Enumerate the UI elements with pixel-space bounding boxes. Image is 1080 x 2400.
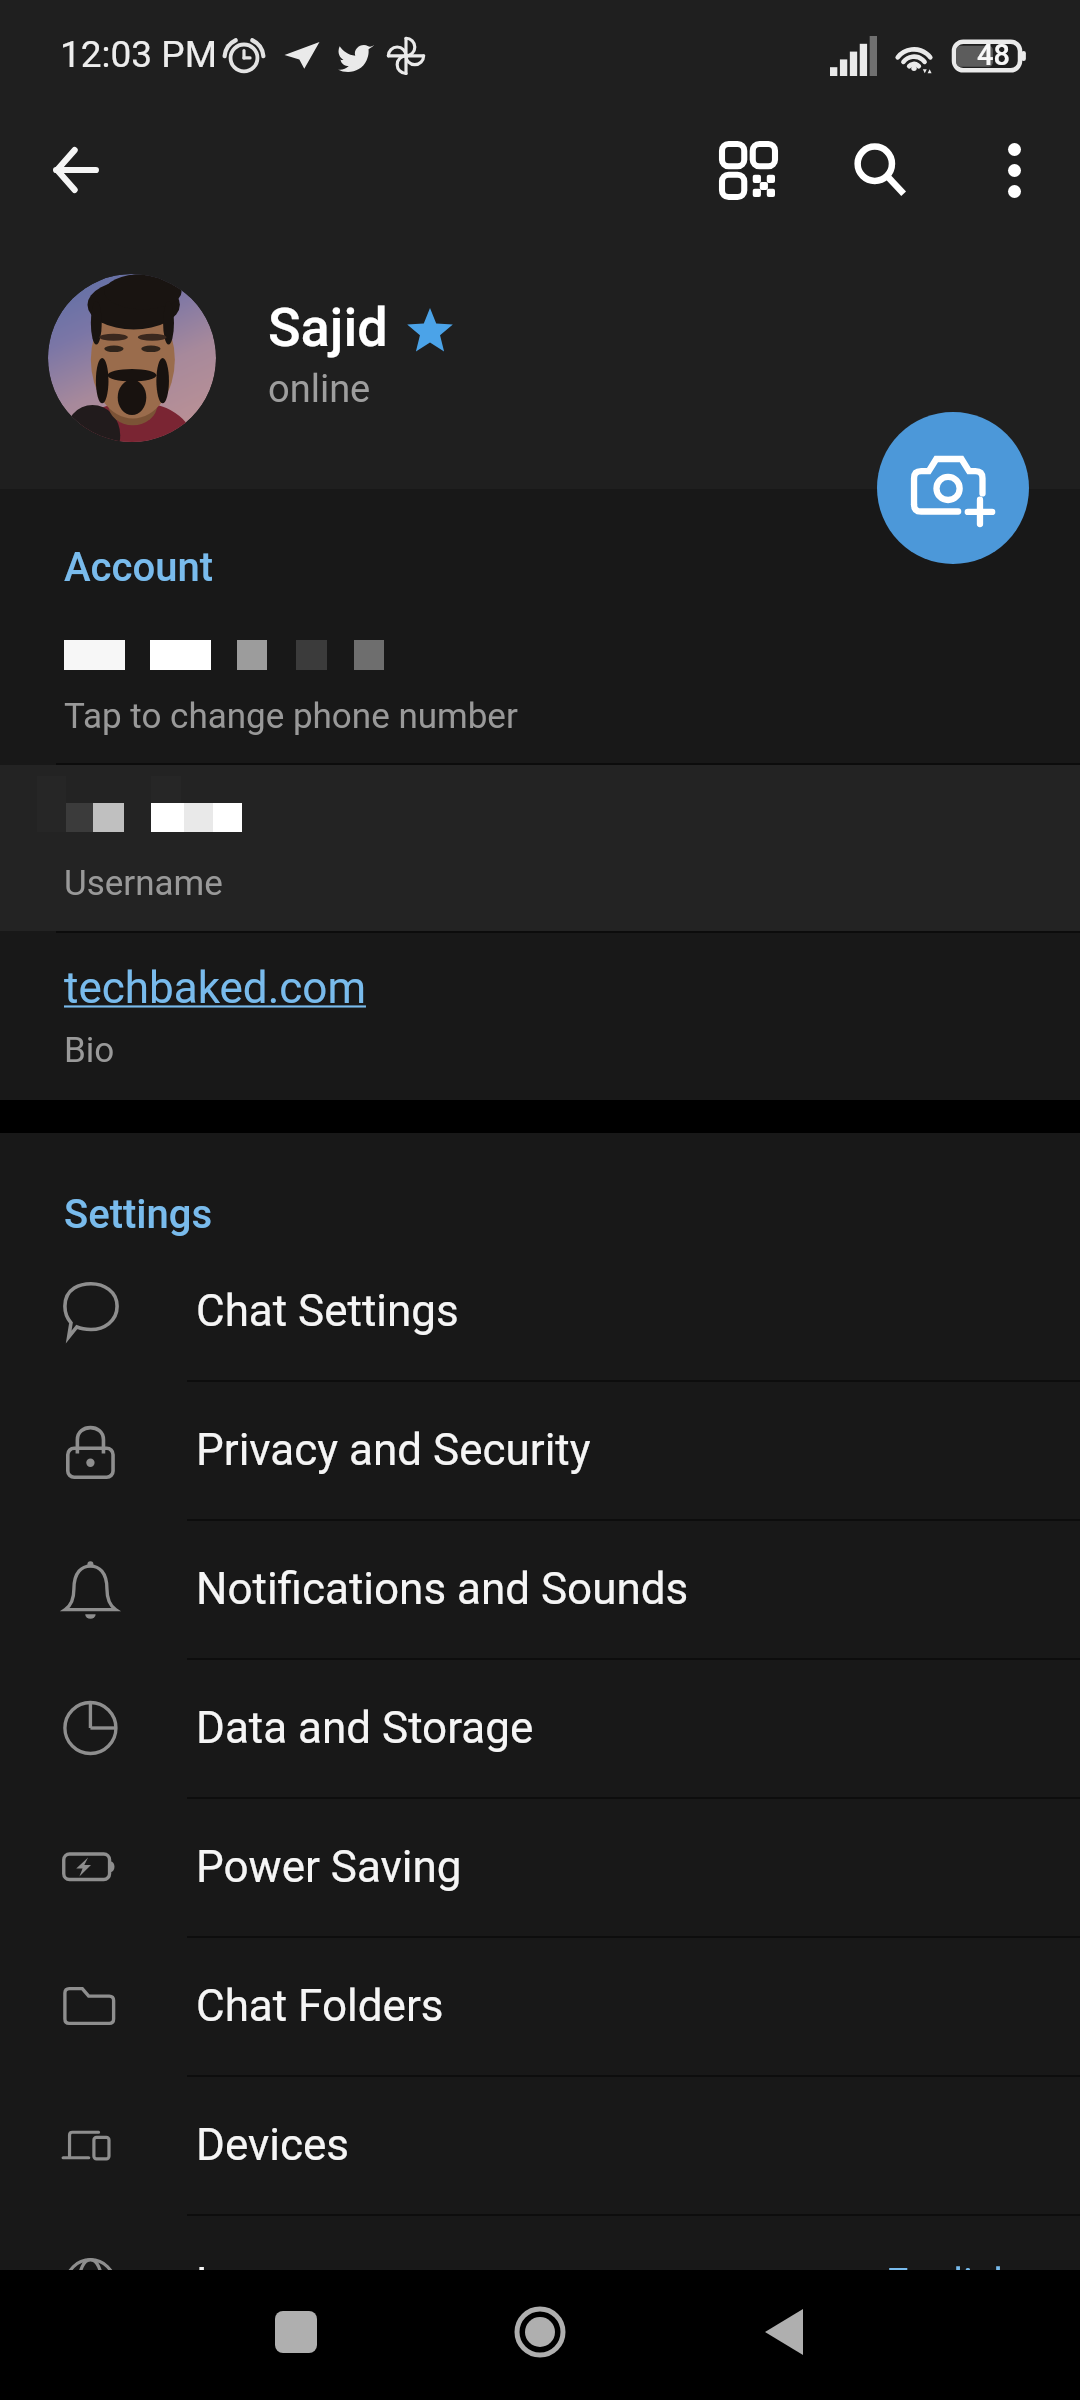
staticText: Power Saving <box>196 1841 462 1893</box>
button[interactable]: Power Saving <box>0 1797 1080 1936</box>
button[interactable]: Devices <box>0 2075 1080 2214</box>
staticText: online <box>268 367 371 412</box>
staticText: Notifications and Sounds <box>196 1563 689 1615</box>
button[interactable]: Back <box>734 2282 834 2382</box>
staticText: Chat Settings <box>196 1285 459 1337</box>
button[interactable]: Data and Storage <box>0 1658 1080 1797</box>
staticText: 12:03 PM <box>60 33 217 76</box>
button[interactable]: Back <box>28 122 124 218</box>
staticText: Sajid <box>268 296 388 359</box>
button[interactable]: Home <box>490 2282 590 2382</box>
staticText: Bio <box>64 1030 115 1071</box>
button[interactable]: Recents <box>246 2282 346 2382</box>
staticText: techbaked.com <box>64 962 366 1014</box>
staticText: Language <box>196 2258 389 2310</box>
button[interactable]: Privacy and Security <box>0 1380 1080 1519</box>
button[interactable] <box>48 274 216 442</box>
staticText: Settings <box>64 1191 213 1238</box>
button[interactable]: Username <box>0 765 1080 931</box>
staticText: Account <box>64 544 214 591</box>
staticText: Username <box>64 863 223 904</box>
button[interactable]: Chat Settings <box>0 1241 1080 1380</box>
staticText: Data and Storage <box>196 1702 534 1754</box>
button[interactable]: Change profile photo <box>877 412 1029 564</box>
button[interactable]: Language <box>0 2214 1080 2353</box>
staticText: English <box>886 2260 1016 2307</box>
staticText: Privacy and Security <box>196 1424 591 1476</box>
button[interactable]: Tap to change phone number <box>0 601 1080 763</box>
button[interactable]: More options <box>966 122 1062 218</box>
staticText: Tap to change phone number <box>64 696 518 737</box>
button[interactable]: QR code <box>700 122 796 218</box>
button[interactable]: Search <box>832 122 928 218</box>
staticText: Devices <box>196 2119 350 2171</box>
staticText: Chat Folders <box>196 1980 444 2032</box>
button[interactable]: techbaked.com <box>0 933 1080 1100</box>
button[interactable]: Chat Folders <box>0 1936 1080 2075</box>
button[interactable]: Notifications and Sounds <box>0 1519 1080 1658</box>
staticText: 48 <box>977 38 1010 72</box>
